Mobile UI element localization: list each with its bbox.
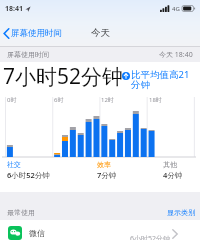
staticText: 6时	[54, 96, 64, 104]
staticText: 比平均值高21	[131, 68, 190, 81]
staticText: 18时	[149, 96, 162, 104]
staticText: 今天	[91, 27, 110, 39]
button[interactable]: 微信	[0, 220, 200, 240]
staticText: 社交	[7, 160, 21, 169]
staticText: 分钟	[131, 79, 150, 91]
staticText: 7分钟	[97, 170, 117, 180]
staticText: 18:41	[5, 4, 23, 14]
button[interactable]: 显示类别	[167, 208, 195, 217]
button[interactable]: 屏幕使用时间	[3, 28, 62, 39]
staticText: 4分钟	[163, 170, 183, 180]
staticText: 其他	[163, 160, 177, 169]
staticText: 12时	[101, 96, 114, 104]
staticText: 4G	[172, 5, 180, 13]
staticText: 6小时52分钟	[7, 170, 50, 180]
staticText: 最常使用	[7, 208, 35, 217]
staticText: 屏幕使用时间	[7, 50, 49, 59]
staticText: 6小时52分钟	[130, 234, 171, 240]
staticText: 今天 18:40	[159, 50, 193, 60]
staticText: 屏幕使用时间	[11, 28, 62, 39]
staticText: 0时	[7, 96, 17, 104]
staticText: 效率	[97, 160, 111, 169]
staticText: 7小时52分钟	[3, 62, 124, 91]
staticText: 微信	[29, 228, 45, 238]
